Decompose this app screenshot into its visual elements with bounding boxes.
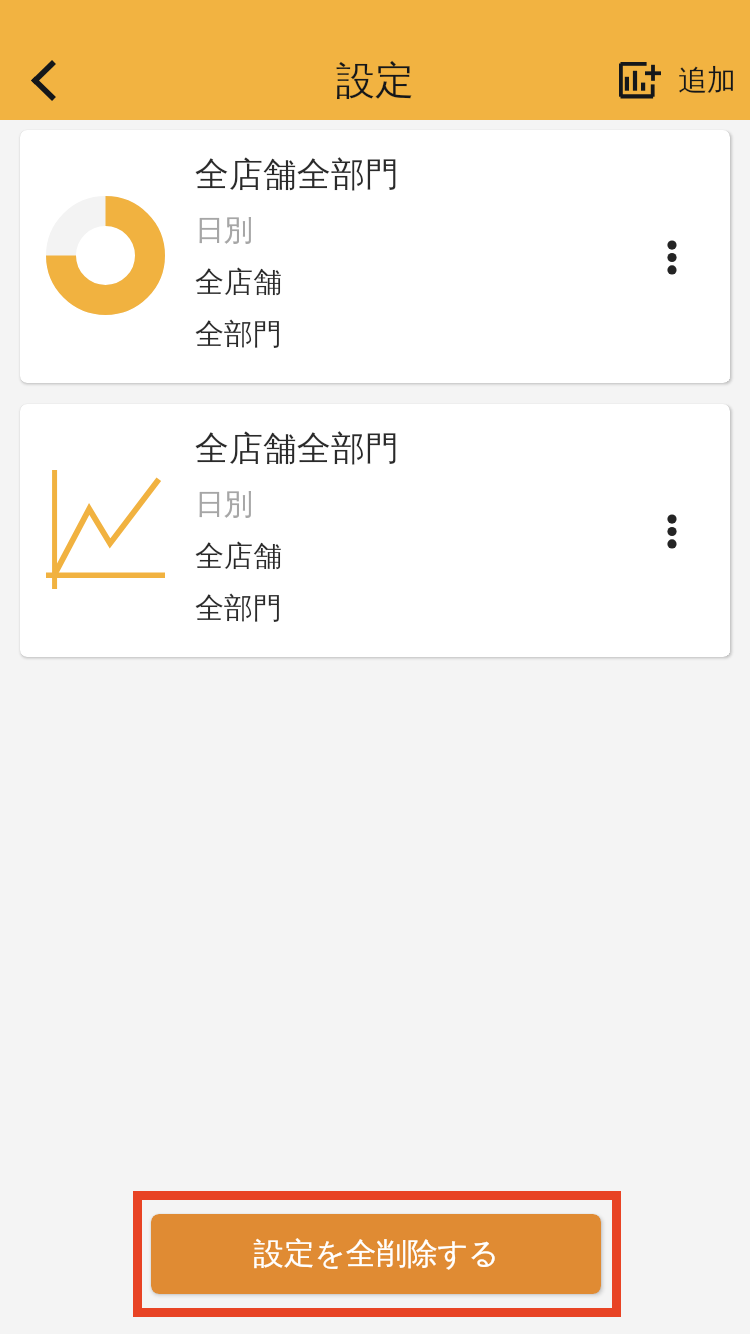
staticText: 日別 — [195, 486, 253, 523]
button[interactable]: 全店舗全部門 — [20, 130, 730, 383]
staticText: 日別 — [195, 212, 253, 249]
staticText: 全部門 — [195, 316, 282, 353]
staticText: 全店舗 — [195, 264, 282, 301]
staticText: 設定を全削除する — [253, 1235, 500, 1273]
staticText: 全店舗全部門 — [195, 427, 399, 470]
button[interactable]: 全店舗全部門 — [20, 404, 730, 657]
button[interactable]: Back — [11, 48, 75, 112]
staticText: 全店舗全部門 — [195, 153, 399, 196]
button[interactable]: More options — [640, 225, 704, 289]
button[interactable]: 設定を全削除する — [151, 1214, 601, 1294]
staticText: 設定 — [336, 56, 414, 105]
staticText: 全店舗 — [195, 538, 282, 575]
button[interactable]: 追加 — [619, 62, 736, 99]
button[interactable]: More options — [640, 499, 704, 563]
staticText: 全部門 — [195, 590, 282, 627]
staticText: 追加 — [678, 62, 736, 99]
